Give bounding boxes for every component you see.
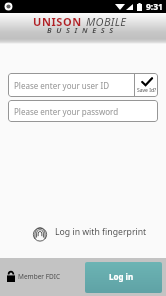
button[interactable]: Log in with fingerprint	[33, 227, 166, 242]
button[interactable]: Save Id	[135, 73, 158, 97]
staticText: Member FDIC	[18, 272, 61, 281]
staticText: Log in	[109, 271, 134, 282]
staticText: UNISON	[33, 14, 82, 29]
button[interactable]: Please enter your user ID	[8, 73, 134, 97]
button[interactable]: Please enter your password	[8, 100, 158, 122]
button[interactable]: Log in	[85, 262, 162, 293]
staticText: MOBILE	[86, 14, 127, 29]
staticText: Please enter your user ID	[14, 80, 110, 91]
staticText: Save Id?	[137, 87, 157, 94]
button[interactable]: Member FDIC	[7, 271, 61, 282]
staticText: B U S I N E S S	[47, 25, 115, 35]
staticText: Log in with fingerprint	[55, 226, 147, 238]
staticText: Please enter your password	[14, 106, 119, 117]
staticText: 9:31	[146, 1, 163, 13]
